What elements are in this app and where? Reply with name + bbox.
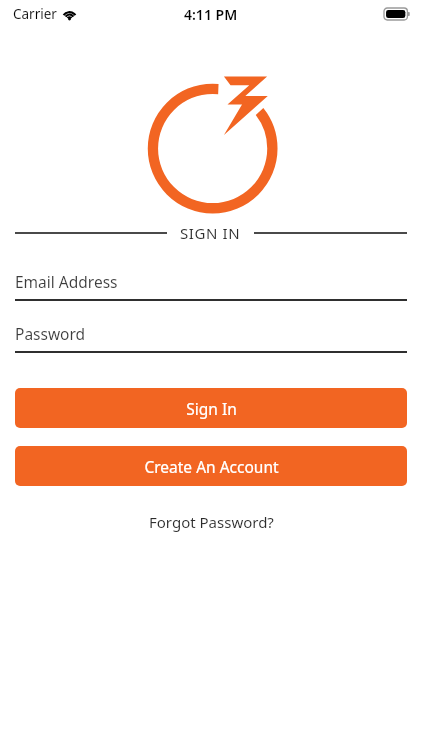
- staticText: Password: [15, 323, 86, 344]
- staticText: Sign In: [186, 398, 237, 419]
- button[interactable]: Email Address: [15, 271, 407, 301]
- button[interactable]: Create An Account: [15, 446, 407, 486]
- staticText: 4:11 PM: [184, 5, 238, 24]
- button[interactable]: Sign In: [15, 388, 407, 428]
- staticText: Forgot Password?: [149, 512, 274, 532]
- other: App logo: [145, 66, 277, 194]
- staticText: Email Address: [15, 271, 118, 292]
- button[interactable]: Forgot Password?: [139, 507, 284, 537]
- button[interactable]: Password: [15, 323, 407, 353]
- staticText: SIGN IN: [180, 223, 241, 243]
- staticText: Create An Account: [144, 456, 279, 477]
- staticText: Carrier: [13, 5, 57, 23]
